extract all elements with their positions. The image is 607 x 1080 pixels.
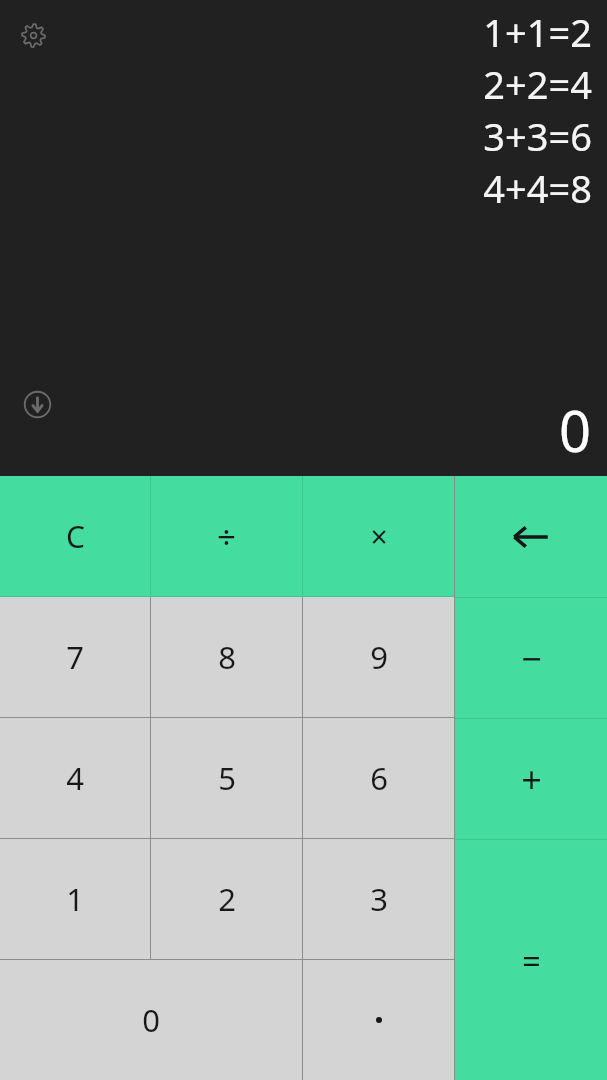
staticText: C: [66, 516, 85, 557]
button[interactable]: Backspace: [455, 476, 607, 597]
staticText: 3+3=6: [483, 110, 592, 162]
staticText: 0: [142, 999, 160, 1041]
button[interactable]: 1: [0, 839, 150, 959]
button[interactable]: 8: [151, 597, 302, 717]
staticText: 9: [370, 636, 388, 678]
button[interactable]: −: [455, 598, 607, 718]
staticText: 8: [218, 636, 236, 678]
button[interactable]: ÷: [151, 476, 302, 596]
button[interactable]: 4: [0, 718, 150, 838]
staticText: 6: [370, 757, 388, 799]
button[interactable]: 7: [0, 597, 150, 717]
staticText: 7: [66, 636, 84, 678]
button[interactable]: Save history: [17, 384, 57, 424]
button[interactable]: =: [455, 840, 607, 1080]
button[interactable]: +: [455, 719, 607, 839]
staticText: 5: [218, 757, 236, 799]
staticText: 4+4=8: [483, 162, 592, 214]
staticText: ÷: [217, 514, 236, 559]
staticText: −: [521, 634, 542, 683]
button[interactable]: 5: [151, 718, 302, 838]
staticText: =: [522, 938, 541, 983]
staticText: 3: [370, 878, 388, 920]
staticText: 2+2=4: [483, 58, 592, 110]
staticText: 2: [218, 878, 236, 920]
button[interactable]: Settings: [13, 15, 53, 55]
button[interactable]: 2: [151, 839, 302, 959]
button[interactable]: C: [0, 476, 150, 596]
button[interactable]: 0: [0, 960, 302, 1080]
staticText: 1+1=2: [483, 6, 592, 58]
button[interactable]: 3: [303, 839, 454, 959]
button[interactable]: 9: [303, 597, 454, 717]
staticText: 1: [66, 878, 84, 920]
button[interactable]: ×: [303, 476, 454, 596]
button[interactable]: Decimal point: [303, 960, 454, 1080]
staticText: ×: [370, 516, 388, 557]
button[interactable]: 6: [303, 718, 454, 838]
staticText: 4: [66, 757, 84, 799]
staticText: +: [521, 755, 542, 804]
staticText: 0: [559, 392, 592, 468]
